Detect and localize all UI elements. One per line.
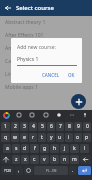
staticText: x <box>24 156 27 163</box>
button[interactable]: p <box>83 133 91 142</box>
button[interactable]: Mobile apps 1 <box>0 81 92 94</box>
button[interactable]: 5 <box>38 122 46 131</box>
button[interactable]: x <box>21 155 29 164</box>
button[interactable]: Clipboard <box>42 111 50 119</box>
button[interactable]: w <box>11 133 19 142</box>
staticText: n <box>63 156 67 163</box>
staticText: g <box>43 145 47 152</box>
button[interactable]: r <box>29 133 37 142</box>
button[interactable]: s <box>12 144 20 153</box>
button[interactable]: Add course <box>71 94 86 109</box>
staticText: Linear algebra <box>5 71 39 78</box>
button[interactable]: 4 <box>29 122 37 131</box>
staticText: 1 <box>4 123 7 130</box>
staticText: f <box>34 145 36 152</box>
button[interactable]: e <box>20 133 28 142</box>
button[interactable]: a <box>3 144 11 153</box>
button[interactable]: g <box>40 144 49 153</box>
button[interactable]: Enter <box>78 166 91 175</box>
button[interactable]: n <box>60 155 69 164</box>
button[interactable]: Back <box>2 2 14 14</box>
staticText: Abstract theory 1 <box>5 19 46 26</box>
staticText: Select course <box>16 4 54 12</box>
staticText: z <box>15 156 18 163</box>
button[interactable]: Shift <box>1 155 11 164</box>
staticText: q <box>4 134 8 141</box>
staticText: r <box>32 134 35 141</box>
button[interactable]: o <box>74 133 82 142</box>
staticText: OK <box>68 72 75 78</box>
staticText: 9 <box>77 123 80 130</box>
staticText: 7 <box>59 123 62 130</box>
button[interactable]: Stickers <box>15 111 23 119</box>
button[interactable]: h <box>50 144 59 153</box>
button[interactable]: v <box>40 155 49 164</box>
staticText: e <box>23 134 26 141</box>
button[interactable]: z <box>12 155 20 164</box>
button[interactable]: GIF <box>28 111 36 119</box>
button[interactable]: Linear algebra <box>0 68 92 81</box>
staticText: Add new course: <box>17 44 56 51</box>
staticText: p <box>85 134 89 141</box>
button[interactable]: i <box>65 133 73 142</box>
button[interactable]: j <box>60 144 69 153</box>
staticText: 4 <box>32 123 35 130</box>
button[interactable]: Google <box>3 112 10 119</box>
staticText: s <box>15 145 18 152</box>
button[interactable]: 7 <box>56 122 64 131</box>
staticText: v <box>43 156 46 163</box>
button[interactable]: b <box>50 155 59 164</box>
button[interactable]: PL - EN <box>34 166 68 175</box>
staticText: CANCEL <box>42 72 60 78</box>
button[interactable]: k <box>70 144 79 153</box>
button[interactable]: Settings <box>55 111 63 119</box>
button[interactable]: u <box>56 133 64 142</box>
staticText: , <box>18 167 20 174</box>
staticText: PL - EN <box>46 169 57 173</box>
button[interactable]: OK <box>66 71 77 79</box>
button[interactable]: , <box>15 166 23 175</box>
button[interactable]: . <box>69 166 77 175</box>
staticText: j <box>64 145 66 152</box>
button[interactable]: d <box>21 144 29 153</box>
button[interactable]: Analysis 2 <box>0 42 92 55</box>
button[interactable]: CANCEL <box>40 71 62 79</box>
button[interactable]: 3 <box>20 122 28 131</box>
button[interactable]: Voice input <box>81 111 89 119</box>
button[interactable]: 8 <box>65 122 73 131</box>
staticText: d <box>23 145 27 152</box>
staticText: y <box>50 134 53 141</box>
button[interactable]: 0 <box>83 122 91 131</box>
staticText: Career s... <box>5 58 29 65</box>
button[interactable]: Language <box>24 166 33 175</box>
button[interactable]: m <box>70 155 79 164</box>
staticText: w <box>13 134 17 141</box>
staticText: b <box>53 156 57 163</box>
button[interactable]: c <box>30 155 39 164</box>
staticText: i <box>68 134 70 141</box>
button[interactable]: 1 <box>1 122 10 131</box>
staticText: ?123 <box>4 169 11 173</box>
button[interactable]: 6 <box>47 122 55 131</box>
button[interactable]: After Effects 101 <box>0 29 92 42</box>
staticText: a <box>6 145 9 152</box>
button[interactable]: t <box>38 133 46 142</box>
staticText: t <box>41 134 43 141</box>
button[interactable]: 9 <box>74 122 82 131</box>
staticText: Mobile apps 1 <box>5 84 38 91</box>
button[interactable]: Backspace <box>80 155 91 164</box>
staticText: m <box>72 156 77 163</box>
staticText: 3 <box>23 123 26 130</box>
button[interactable]: q <box>1 133 10 142</box>
button[interactable]: Career s... <box>0 55 92 68</box>
staticText: o <box>76 134 80 141</box>
button[interactable]: More <box>68 111 76 119</box>
staticText: h <box>53 145 57 152</box>
button[interactable]: ?123 <box>1 166 14 175</box>
button[interactable]: y <box>47 133 55 142</box>
button[interactable]: l <box>80 144 89 153</box>
button[interactable]: Abstract theory 1 <box>0 16 92 29</box>
button[interactable]: 2 <box>11 122 19 131</box>
button[interactable]: f <box>30 144 39 153</box>
staticText: 5 <box>41 123 44 130</box>
